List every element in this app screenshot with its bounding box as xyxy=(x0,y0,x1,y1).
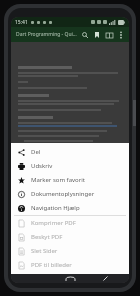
button[interactable]: Udskriv xyxy=(11,159,129,173)
button[interactable]: Back xyxy=(95,274,115,283)
button[interactable]: Komprimer PDF xyxy=(11,216,129,230)
button[interactable]: Del xyxy=(11,145,129,159)
staticText: Dart Programming - Quick Guide xyxy=(16,31,79,38)
staticText: Beskyt PDF xyxy=(31,233,63,241)
staticText: Slet Sider xyxy=(31,247,58,255)
staticText: Udskriv xyxy=(31,162,53,170)
button[interactable]: Home xyxy=(60,274,80,283)
button[interactable]: Slet Sider xyxy=(11,244,129,258)
button[interactable]: Search xyxy=(79,29,91,41)
button[interactable]: Beskyt PDF xyxy=(11,230,129,244)
button[interactable]: Bookmark xyxy=(91,29,103,41)
button[interactable]: Navigation Hjælp xyxy=(11,201,129,215)
button[interactable]: Marker som favorit xyxy=(11,173,129,187)
staticText: Navigation Hjælp xyxy=(31,204,80,212)
staticText: Komprimer PDF xyxy=(31,219,76,227)
staticText: Marker som favorit xyxy=(31,176,85,184)
button[interactable]: PDF til billeder xyxy=(11,258,129,272)
staticText: Dokumentoplysninger xyxy=(31,190,95,198)
button[interactable]: Display options xyxy=(103,29,115,41)
staticText: 15:41 xyxy=(15,19,28,26)
button[interactable]: Dokumentoplysninger xyxy=(11,187,129,201)
staticText: Del xyxy=(31,148,41,156)
staticText: PDF til billeder xyxy=(31,261,72,269)
button[interactable]: More options xyxy=(115,29,126,40)
